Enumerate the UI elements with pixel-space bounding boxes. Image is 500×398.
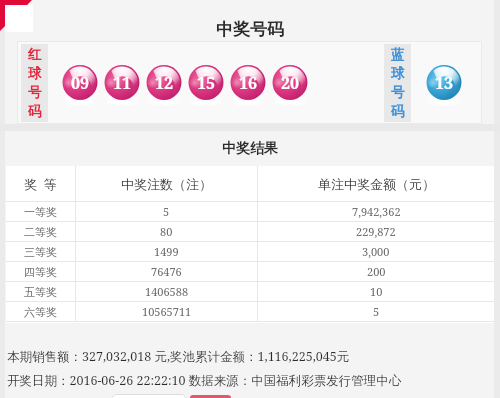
staticText: 中奖号码 (216, 19, 284, 40)
staticText: 5 (373, 304, 380, 319)
staticText: 六等奖 (24, 305, 57, 319)
staticText: 开奖日期：2016-06-26 22:22:10 数据来源：中国福利彩票发行管理… (7, 372, 402, 389)
staticText: 11 (113, 72, 132, 94)
staticText: 中奖结果 (222, 140, 278, 158)
button[interactable]: 二等奖 (6, 222, 494, 241)
staticText: 15 (197, 72, 216, 94)
staticText: 单注中奖金额（元） (318, 176, 435, 192)
staticText: 号 (28, 84, 42, 101)
staticText: 球 (391, 65, 405, 82)
staticText: 13 (435, 72, 454, 94)
button[interactable]: 蓝 (384, 44, 411, 122)
staticText: 中奖注数（注） (121, 176, 212, 192)
button[interactable]: 三等奖 (6, 242, 494, 261)
button[interactable]: 红 (21, 44, 48, 122)
staticText: 码 (391, 103, 405, 120)
staticText: 二等奖 (24, 225, 57, 239)
button[interactable]: 一等奖 (6, 202, 494, 221)
staticText: 12 (155, 72, 174, 94)
button[interactable]: 六等奖 (6, 302, 494, 321)
staticText: 80 (160, 224, 173, 239)
staticText: 3,000 (362, 244, 390, 259)
staticText: 5 (163, 204, 170, 219)
staticText: 10565711 (142, 304, 192, 319)
button[interactable] (190, 395, 231, 398)
staticText: 一等奖 (24, 205, 57, 219)
staticText: 红 (28, 46, 42, 63)
staticText: 7,942,362 (352, 204, 401, 219)
staticText: 本期销售额：327,032,018 元,奖池累计金额：1,116,225,045… (7, 348, 350, 365)
button[interactable]: 四等奖 (6, 262, 494, 281)
staticText: 229,872 (356, 224, 396, 239)
button[interactable]: Back (0, 0, 40, 40)
staticText: 奖 等 (24, 175, 57, 193)
staticText: 码 (28, 103, 42, 120)
staticText: 蓝 (391, 46, 405, 63)
staticText: 号 (391, 84, 405, 101)
staticText: 16 (239, 72, 258, 94)
staticText: 五等奖 (24, 285, 57, 299)
staticText: 10 (370, 284, 383, 299)
staticText: 200 (367, 264, 386, 279)
staticText: 三等奖 (24, 245, 57, 259)
button[interactable] (112, 394, 186, 398)
staticText: 1499 (154, 244, 179, 259)
staticText: 球 (28, 65, 42, 82)
button[interactable]: 五等奖 (6, 282, 494, 301)
staticText: 76476 (151, 264, 182, 279)
staticText: 09 (71, 72, 90, 94)
button[interactable]: 奖 等 (6, 166, 494, 201)
staticText: 四等奖 (24, 265, 57, 279)
staticText: 1406588 (145, 284, 189, 299)
staticText: 20 (281, 72, 300, 94)
